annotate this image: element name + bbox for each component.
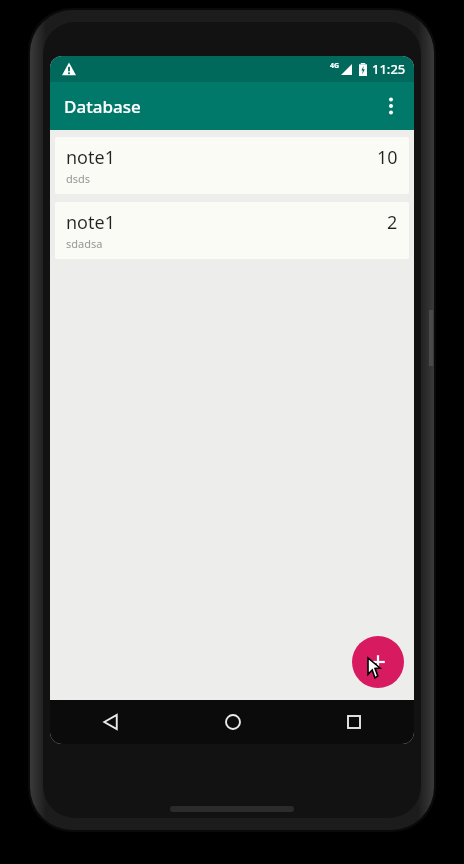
button[interactable]: Home xyxy=(172,700,293,744)
button[interactable]: Recent apps xyxy=(293,700,414,744)
staticText: Database xyxy=(64,95,141,118)
staticText: note1 xyxy=(66,145,115,170)
staticText: 4G xyxy=(330,61,340,71)
button[interactable]: Add note xyxy=(352,636,404,688)
button[interactable]: note1 xyxy=(55,137,409,194)
staticText: 2 xyxy=(387,210,398,235)
staticText: 11:25 xyxy=(372,60,406,78)
button[interactable]: Back xyxy=(50,700,172,744)
staticText: note1 xyxy=(66,210,115,235)
button[interactable]: note1 xyxy=(55,202,409,259)
staticText: sdadsa xyxy=(66,236,103,251)
button[interactable]: More options xyxy=(368,83,414,129)
staticText: 10 xyxy=(377,145,398,170)
staticText: dsds xyxy=(66,171,91,186)
